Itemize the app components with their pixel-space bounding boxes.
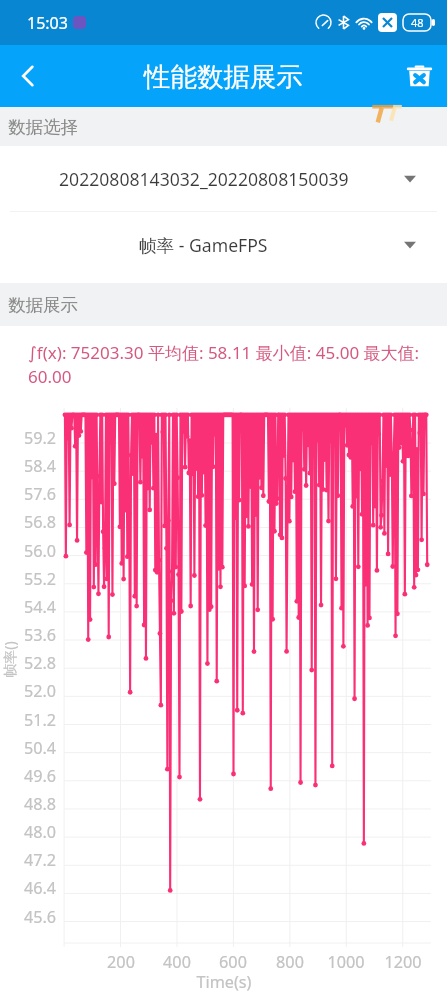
staticText: 48 xyxy=(411,15,424,30)
staticText: 性能数据展示 xyxy=(144,60,303,93)
staticText: ∫f(x): 75203.30 平均值: 58.11 最小值: 45.00 最大… xyxy=(28,341,433,388)
staticText: 600 xyxy=(208,951,258,973)
staticText: 1000 xyxy=(321,951,371,973)
staticText: 52.8 xyxy=(14,652,56,674)
staticText: 56.8 xyxy=(14,511,56,533)
staticText: 45.6 xyxy=(14,906,56,928)
staticText: 48.8 xyxy=(14,793,56,815)
staticText: Time(s) xyxy=(184,971,264,993)
staticText: 57.6 xyxy=(14,483,56,505)
staticText: 15:03 xyxy=(27,12,68,34)
button[interactable]: Delete xyxy=(391,48,447,104)
staticText: 200 xyxy=(96,951,146,973)
staticText: 54.4 xyxy=(14,596,56,618)
staticText: 20220808143032_20220808150039 xyxy=(59,167,349,191)
staticText: 58.4 xyxy=(14,455,56,477)
button[interactable]: 帧率 - GameFPS xyxy=(0,212,447,277)
staticText: 帧率() xyxy=(0,629,18,689)
button[interactable]: Back xyxy=(0,48,56,104)
staticText: 49.6 xyxy=(14,765,56,787)
staticText: 47.2 xyxy=(14,849,56,871)
staticText: 数据展示 xyxy=(8,294,78,316)
staticText: 48.0 xyxy=(14,821,56,843)
staticText: 55.2 xyxy=(14,568,56,590)
staticText: 59.2 xyxy=(14,427,56,449)
staticText: 数据选择 xyxy=(8,116,78,138)
button[interactable]: 20220808143032_20220808150039 xyxy=(0,146,447,211)
staticText: 52.0 xyxy=(14,680,56,702)
staticText: 51.2 xyxy=(14,709,56,731)
staticText: 1200 xyxy=(378,951,428,973)
staticText: 46.4 xyxy=(14,877,56,899)
staticText: 50.4 xyxy=(14,737,56,759)
staticText: 400 xyxy=(152,951,202,973)
staticText: 帧率 - GameFPS xyxy=(139,233,268,257)
staticText: 56.0 xyxy=(14,540,56,562)
staticText: 53.6 xyxy=(14,624,56,646)
staticText: 800 xyxy=(265,951,315,973)
